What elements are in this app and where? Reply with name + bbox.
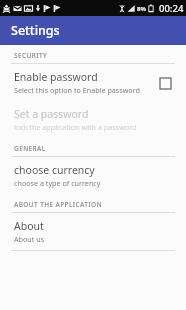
button[interactable]: Set a password [0, 101, 186, 138]
staticText: Enable password [14, 70, 98, 84]
button[interactable]: About [0, 213, 186, 250]
staticText: GENERAL [14, 144, 46, 153]
button[interactable]: choose currency [0, 157, 186, 194]
staticText: choose a type of currency [14, 178, 101, 188]
staticText: 8% [137, 5, 146, 13]
staticText: About [14, 219, 44, 233]
staticText: ABOUT THE APPLICATION [14, 200, 102, 209]
staticText: SECURITY [14, 51, 48, 60]
staticText: 00:24 [159, 2, 184, 15]
staticText: Select this option to Enable password [14, 85, 140, 95]
staticText: Set a password [14, 107, 89, 121]
staticText: Settings [11, 22, 60, 39]
staticText: About us [14, 234, 45, 244]
staticText: lock the application with a password [14, 122, 137, 132]
button[interactable]: Enable password [0, 64, 186, 101]
button[interactable]: Enable password checkbox [154, 72, 176, 94]
staticText: choose currency [14, 163, 95, 177]
